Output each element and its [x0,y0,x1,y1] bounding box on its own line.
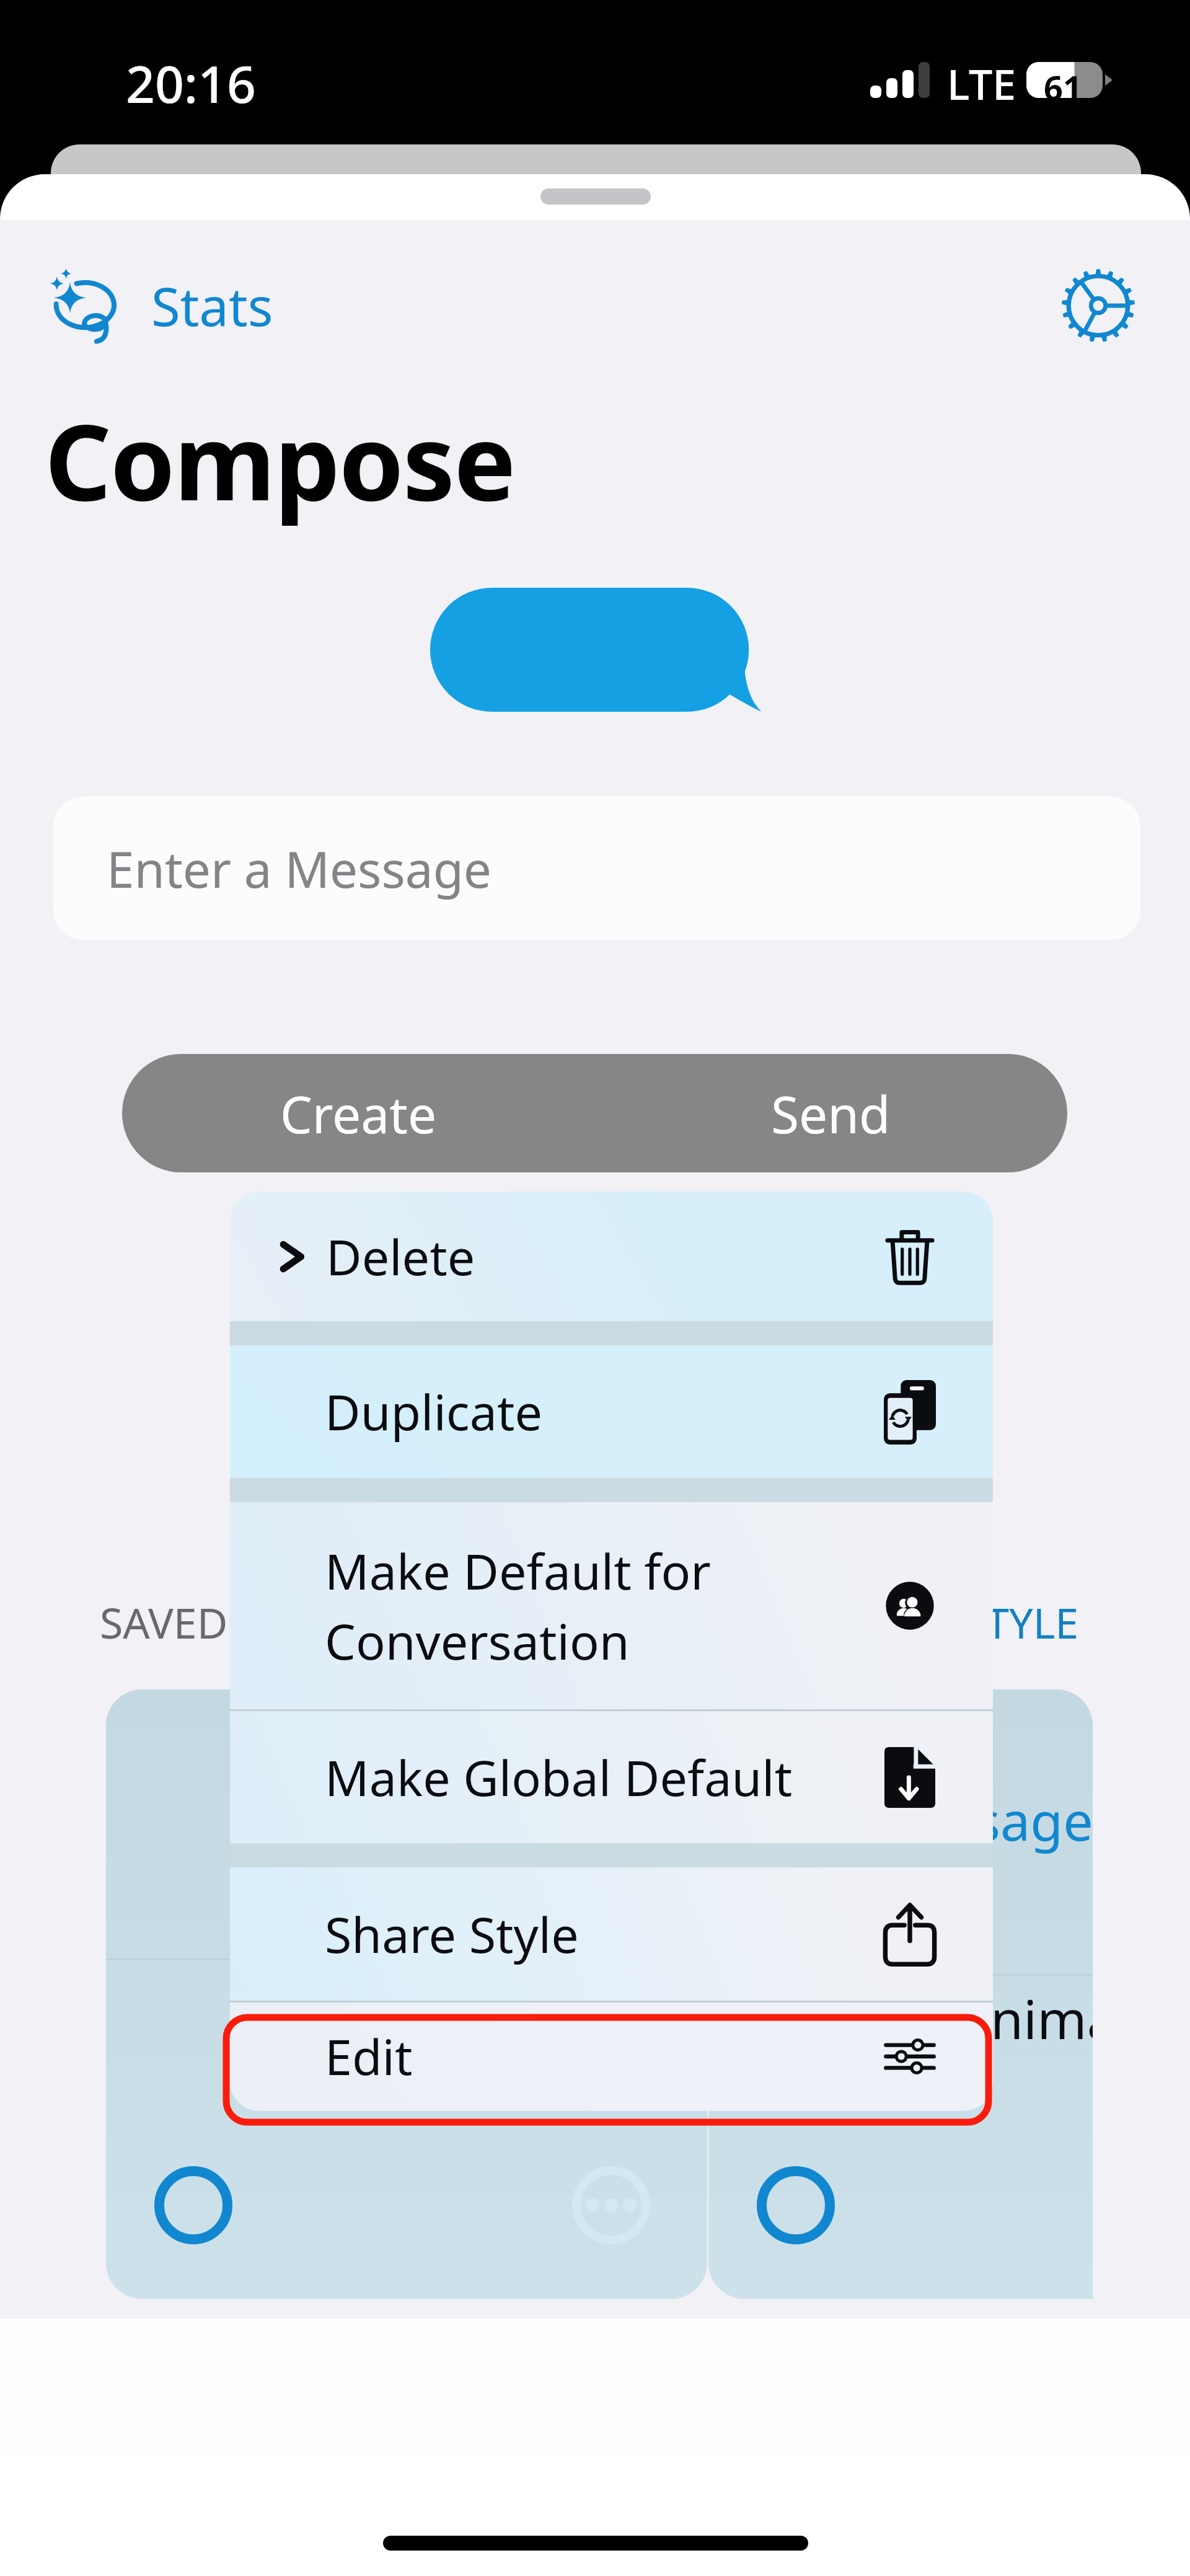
staticText: Make Global Default [325,1744,793,1811]
button[interactable]: Message bubble preview [430,588,761,712]
staticText: 20:16 [126,48,256,118]
button[interactable]: Make Default for Conversation [230,1502,993,1709]
button[interactable]: Edit [230,2003,993,2110]
staticText: Stats [151,270,273,342]
staticText: Edit [325,2023,413,2090]
button[interactable]: Duplicate [230,1345,993,1478]
staticText: Delete [326,1223,475,1290]
button[interactable]: Settings [1042,250,1154,361]
button[interactable]: Delete [230,1192,993,1321]
staticText: Send [771,1079,891,1148]
staticText: 61 [1044,64,1082,110]
button[interactable]: Share Style [230,1867,993,2001]
button[interactable]: Select style [106,1689,707,2299]
staticText: Compose [45,389,515,531]
staticText: Share Style [325,1901,579,1968]
staticText: STYLE [963,1593,1079,1651]
button[interactable]: Enter a Message [53,797,1140,940]
staticText: Duplicate [325,1378,543,1445]
button[interactable]: More options [572,2166,650,2244]
button[interactable]: Stats [0,247,292,365]
staticText: SAVED [100,1593,228,1651]
staticText: Animated [956,1982,1093,2055]
staticText: Enter a Message [107,834,491,902]
staticText: Send Message [732,1784,1093,1856]
button[interactable]: Create [122,1054,1067,1172]
button[interactable]: Select style [757,2166,835,2244]
staticText: Make Default for Conversation [325,1538,711,1674]
staticText: LTE [947,55,1016,112]
staticText: Create [280,1079,437,1148]
button[interactable]: Select style [154,2166,232,2244]
button[interactable]: Select style [708,1689,1093,2299]
button[interactable]: Make Global Default [230,1711,993,1843]
